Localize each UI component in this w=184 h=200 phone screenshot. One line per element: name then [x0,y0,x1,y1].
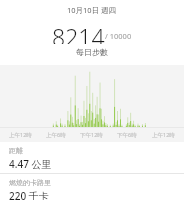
button[interactable]: 距離 [0,142,184,173]
button[interactable]: 10月10日 週四 [0,4,184,16]
staticText: 8214 [52,21,105,44]
staticText: 10月10日 週四 [67,5,117,15]
staticText: 220 千卡 [9,189,49,200]
staticText: 上午12時 [152,131,175,139]
staticText: 燃燒的卡路里 [9,178,51,187]
staticText: 上午6時 [46,131,66,139]
staticText: 上午12時 [9,131,32,139]
staticText: / 10000 [105,31,132,41]
staticText: 距離 [9,146,23,155]
staticText: 下午6時 [117,131,137,139]
staticText: 每日步數 [76,47,108,57]
button[interactable]: 燃燒的卡路里 [0,174,184,200]
button[interactable]: Daily step chart [0,65,184,142]
staticText: 下午12時 [80,131,103,139]
staticText: 4.47 公里 [9,157,52,171]
